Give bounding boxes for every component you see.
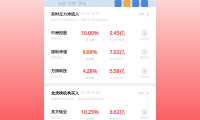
- staticText: 龙虎榜机构净买入，反映机构资金的动向: [51, 97, 105, 100]
- staticText: 6.62亿: [109, 108, 124, 116]
- staticText: 主力净流入: [109, 57, 124, 60]
- staticText: 机构净买入: [109, 117, 124, 120]
- staticText: 10.00%: [81, 29, 99, 37]
- button[interactable]: 深圳华强: [44, 45, 156, 64]
- button[interactable]: 中洲控股: [44, 26, 156, 45]
- staticText: 加自选: [140, 116, 149, 119]
- staticText: 000062: [51, 56, 63, 59]
- staticText: 中洲控股: [51, 30, 67, 35]
- staticText: 10.25%: [81, 108, 99, 116]
- staticText: 万润科技: [51, 68, 67, 73]
- staticText: 更多: [138, 12, 144, 16]
- staticText: 龙虎榜机构买入: [51, 91, 79, 95]
- button[interactable]: 实时主力净流入: [44, 7, 156, 26]
- staticText: 6.69%: [82, 48, 97, 56]
- staticText: 加自选: [140, 37, 149, 40]
- staticText: 实时主力资金净流入，反映主力资金的流向: [51, 18, 108, 21]
- staticText: 002654: [51, 75, 63, 78]
- staticText: 涨跌幅: [85, 76, 94, 79]
- staticText: 涨跌幅: [85, 38, 94, 41]
- staticText: 涨跌幅: [85, 57, 94, 60]
- staticText: 深圳华强: [51, 49, 67, 54]
- button[interactable]: 万润科技: [44, 64, 156, 83]
- staticText: 000962: [51, 116, 63, 119]
- staticText: 06-18 15:00: [81, 91, 100, 95]
- staticText: 涨跌幅: [85, 117, 94, 120]
- staticText: 加自选: [140, 75, 149, 78]
- staticText: 加自选: [140, 56, 149, 59]
- staticText: 实时主力净流入: [51, 12, 79, 16]
- staticText: 东方钽业: [51, 109, 67, 114]
- staticText: 主力净流入: [109, 38, 124, 41]
- staticText: 0.45亿: [109, 29, 124, 37]
- staticText: 自选 行情 资讯: [58, 1, 86, 6]
- staticText: 4.28%: [82, 67, 97, 75]
- button[interactable]: 东方钽业: [44, 105, 156, 120]
- staticText: 5.58亿: [109, 67, 124, 75]
- staticText: 更多: [138, 91, 144, 95]
- staticText: 7.02亿: [109, 48, 124, 56]
- staticText: 主力净流入: [109, 76, 124, 79]
- staticText: 000042: [51, 37, 63, 40]
- staticText: 06-18 14:00: [81, 12, 100, 16]
- button[interactable]: 龙虎榜机构买入: [44, 86, 156, 105]
